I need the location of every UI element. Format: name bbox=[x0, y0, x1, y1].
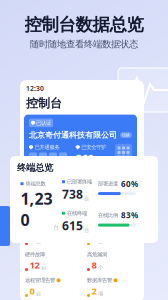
staticText: 738 bbox=[62, 186, 83, 202]
staticText: 终端总数 bbox=[25, 180, 45, 187]
staticText: 12:30 bbox=[26, 84, 44, 93]
staticText: 12 bbox=[29, 259, 39, 271]
staticText: 8 bbox=[91, 259, 96, 271]
staticText: 硬件故障 bbox=[25, 251, 45, 258]
staticText: 个 bbox=[98, 264, 103, 271]
staticText: 在线比例 bbox=[98, 212, 118, 219]
staticText: 0 bbox=[29, 285, 34, 297]
staticText: 切换 bbox=[122, 133, 130, 137]
staticText: 台 bbox=[36, 290, 41, 297]
staticText: 在线终端 bbox=[67, 210, 87, 217]
staticText: 已开通服务 bbox=[34, 144, 59, 151]
staticText: 控制台数据总览 bbox=[24, 14, 143, 35]
staticText: 部署进度 bbox=[98, 180, 118, 187]
staticText: 台 bbox=[98, 239, 103, 245]
staticText: 615 bbox=[62, 217, 83, 233]
staticText: 2 bbox=[91, 285, 96, 297]
staticText: 终端总览 bbox=[17, 162, 53, 173]
staticText: 台 bbox=[36, 239, 41, 245]
staticText: 已认证 bbox=[36, 120, 51, 126]
staticText: 83% bbox=[121, 210, 138, 221]
staticText: 360 bbox=[76, 151, 94, 166]
staticText: 数据库告警 bbox=[87, 277, 112, 284]
staticText: 台 bbox=[84, 227, 89, 233]
staticText: 控制台 bbox=[26, 96, 62, 111]
staticText: 60% bbox=[121, 178, 138, 189]
staticText: 离线终端 bbox=[87, 225, 107, 232]
staticText: 台 bbox=[41, 264, 46, 271]
staticText: 已部署终端 bbox=[67, 178, 92, 185]
staticText: 高危漏洞 bbox=[87, 251, 107, 258]
staticText: 北京奇付通科技有限公司 bbox=[29, 130, 117, 140]
staticText: 台 bbox=[53, 224, 58, 230]
staticText: 待激活终端 bbox=[25, 225, 50, 232]
staticText: 远程管理告警 bbox=[25, 277, 55, 284]
staticText: 1,230 bbox=[20, 188, 52, 230]
staticText: 随时随地查看终端数据状态 bbox=[30, 38, 138, 50]
staticText: 已安全守护 bbox=[81, 144, 106, 151]
staticText: 项 bbox=[98, 290, 103, 297]
staticText: 台 bbox=[84, 195, 89, 202]
